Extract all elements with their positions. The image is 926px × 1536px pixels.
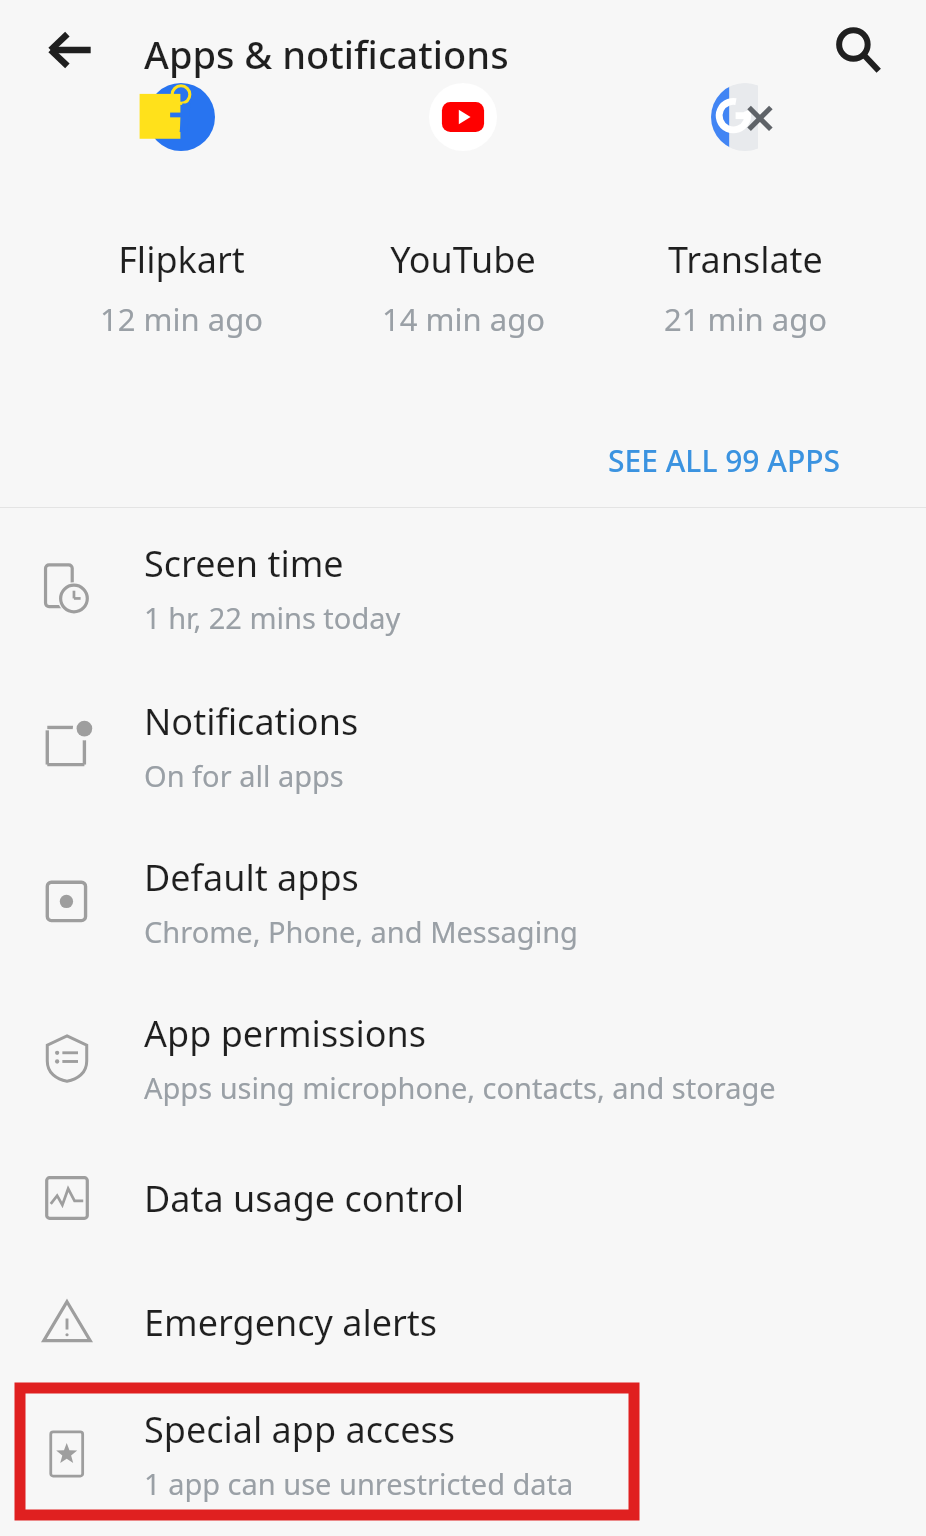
staticText: 1 hr, 22 mins today [144, 598, 401, 637]
button[interactable]: Emergency alerts [0, 1260, 926, 1384]
staticText: Screen time [144, 539, 344, 588]
staticText: Emergency alerts [144, 1298, 438, 1347]
button[interactable]: Search [822, 14, 894, 86]
button[interactable]: YouTube [323, 125, 603, 375]
staticText: 12 min ago [100, 298, 263, 340]
button[interactable]: Screen time [0, 508, 926, 668]
staticText: Default apps [144, 853, 359, 902]
button[interactable]: SEE ALL 99 APPS [590, 425, 859, 495]
staticText: Apps using microphone, contacts, and sto… [144, 1068, 776, 1107]
staticText: Apps & notifications [144, 28, 509, 80]
staticText: Translate [668, 235, 823, 284]
button[interactable]: Translate [605, 125, 885, 375]
staticText: Notifications [144, 697, 359, 746]
button[interactable]: Flipkart [41, 125, 321, 375]
button[interactable]: Special app access [0, 1384, 926, 1524]
staticText: App permissions [144, 1009, 426, 1058]
staticText: 21 min ago [664, 298, 827, 340]
staticText: Chrome, Phone, and Messaging [144, 912, 578, 951]
button[interactable]: App permissions [0, 980, 926, 1136]
staticText: On for all apps [144, 756, 344, 795]
staticText: Data usage control [144, 1174, 465, 1223]
button[interactable]: Back [34, 14, 106, 86]
staticText: SEE ALL 99 APPS [608, 440, 841, 481]
button[interactable]: Notifications [0, 668, 926, 824]
button[interactable]: Default apps [0, 824, 926, 980]
staticText: Special app access [144, 1405, 456, 1454]
staticText: 1 app can use unrestricted data [144, 1464, 574, 1503]
staticText: YouTube [390, 235, 536, 284]
button[interactable]: Data usage control [0, 1136, 926, 1260]
staticText: 14 min ago [382, 298, 545, 340]
staticText: Flipkart [118, 235, 245, 284]
